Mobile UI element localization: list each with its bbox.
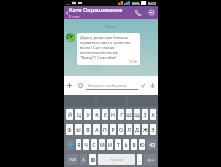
button[interactable]: Й — [66, 109, 73, 120]
button[interactable]: Т — [115, 139, 121, 150]
staticText: К — [95, 111, 99, 118]
staticText: Ц — [77, 111, 81, 118]
button[interactable] — [147, 139, 156, 150]
button[interactable] — [66, 139, 74, 150]
button[interactable]: Voice message — [147, 76, 158, 95]
staticText: Ы — [76, 126, 81, 133]
button[interactable]: Р — [110, 124, 116, 135]
staticText: М — [100, 141, 105, 148]
staticText: Ч — [84, 141, 88, 148]
button[interactable]: More options — [145, 6, 158, 19]
staticText: Ш — [126, 111, 132, 118]
button[interactable]: Н — [110, 109, 116, 120]
button[interactable]: Я — [76, 139, 81, 150]
button[interactable]: М — [99, 139, 105, 150]
staticText: Русский — [110, 158, 123, 162]
staticText: Ж — [143, 126, 148, 133]
staticText: Н — [111, 111, 115, 118]
staticText: Б — [132, 141, 136, 148]
staticText: Катя Окрашивание — [69, 6, 123, 14]
staticText: Щ — [134, 111, 140, 118]
button[interactable]: Е — [102, 109, 108, 120]
button[interactable]: Л — [126, 124, 132, 135]
button[interactable]: О — [118, 124, 124, 135]
staticText: Вчера — [106, 24, 117, 29]
staticText: 66% — [132, 1, 140, 6]
button[interactable]: У — [84, 109, 91, 120]
staticText: У — [86, 111, 90, 118]
button[interactable]: С — [91, 139, 97, 150]
staticText: Л — [127, 126, 131, 133]
staticText: Д — [135, 126, 139, 133]
button[interactable]: Б — [131, 139, 137, 150]
button[interactable]: Emoji — [75, 76, 86, 95]
button[interactable]: Back — [64, 6, 69, 19]
button[interactable] — [144, 154, 156, 165]
staticText: Й — [68, 111, 72, 118]
button[interactable]: Ж — [142, 124, 148, 135]
staticText: С — [92, 141, 96, 148]
button[interactable]: Send — [138, 76, 147, 95]
button[interactable]: П — [102, 124, 108, 135]
staticText: Я — [77, 141, 81, 148]
button[interactable]: Call — [132, 6, 145, 19]
staticText: Ф — [67, 126, 72, 133]
staticText: Х — [151, 111, 155, 118]
button[interactable]: А — [93, 124, 100, 135]
button[interactable]: К — [93, 109, 100, 120]
button[interactable]: И — [107, 139, 113, 150]
button[interactable]: Русский — [98, 154, 135, 165]
staticText: В — [86, 126, 90, 133]
staticText: 11:26 — [129, 60, 138, 64]
button[interactable]: Щ — [134, 109, 140, 120]
staticText: Е — [104, 111, 107, 118]
button[interactable]: З — [142, 109, 148, 120]
staticText: Р — [111, 126, 115, 133]
button[interactable]: . — [137, 154, 142, 165]
staticText: — — [66, 1, 70, 6]
button[interactable]: Д — [134, 124, 140, 135]
staticText: Введите сообщение — [88, 83, 128, 88]
staticText: 0:02 — [148, 1, 156, 6]
button[interactable]: ?123 — [66, 154, 78, 165]
staticText: Г — [120, 111, 123, 118]
staticText: Т — [117, 141, 120, 148]
button[interactable]: Add attachment — [64, 76, 75, 95]
staticText: Э — [151, 126, 155, 133]
button[interactable]: Ч — [83, 139, 89, 150]
staticText: Ю — [139, 141, 145, 148]
staticText: . — [139, 156, 141, 163]
button[interactable]: Ь — [123, 139, 129, 150]
button[interactable] — [89, 154, 96, 165]
staticText: ?123 — [69, 158, 76, 162]
button[interactable]: Ц — [75, 109, 82, 120]
button[interactable]: Ш — [126, 109, 132, 120]
button[interactable]: Ы — [75, 124, 82, 135]
button[interactable]: В — [84, 124, 91, 135]
staticText: Ь — [124, 141, 128, 148]
staticText: В сети — [69, 14, 80, 19]
staticText: И — [108, 141, 112, 148]
staticText: З — [143, 111, 147, 118]
staticText: О — [119, 126, 123, 133]
button[interactable]: Ю — [139, 139, 145, 150]
button[interactable] — [80, 154, 87, 165]
button[interactable]: Э — [150, 124, 156, 135]
button[interactable]: Ф — [66, 124, 73, 135]
staticText: П — [103, 126, 107, 133]
button[interactable]: Г — [118, 109, 124, 120]
staticText: Дарья, дома еще больше нравиться цвет и … — [80, 35, 131, 60]
staticText: А — [95, 126, 99, 133]
button[interactable]: Х — [150, 109, 156, 120]
